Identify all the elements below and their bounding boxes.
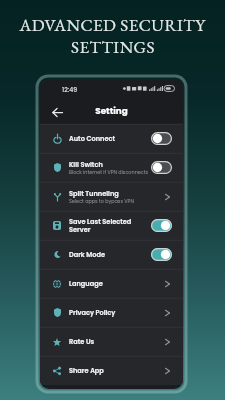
staticText: 12:49 xyxy=(62,85,78,94)
button[interactable]: Privacy Policy xyxy=(40,298,183,327)
button[interactable]: Save Last Selected Server xyxy=(40,211,183,240)
button[interactable]: Privacy Policy xyxy=(162,308,172,318)
button[interactable]: Toggle xyxy=(151,248,172,261)
button[interactable]: Toggle xyxy=(151,219,172,232)
staticText: Select apps to bypass VPN xyxy=(69,198,134,205)
button[interactable]: Dark Mode xyxy=(40,240,183,269)
staticText: Rate Us xyxy=(69,337,95,346)
staticText: Setting xyxy=(40,105,183,117)
button[interactable]: Toggle xyxy=(151,161,172,174)
button[interactable]: Split Tunneling xyxy=(40,182,183,211)
button[interactable]: Auto Connect xyxy=(40,124,183,153)
button[interactable]: Kill Switch xyxy=(40,153,183,182)
staticText: Share App xyxy=(69,366,104,375)
staticText: Block internet if VPN disconnects xyxy=(69,169,149,176)
button[interactable]: Share App xyxy=(40,356,183,385)
staticText: Auto Connect xyxy=(69,134,115,143)
button[interactable]: Language xyxy=(162,279,172,289)
button[interactable]: Rate Us xyxy=(162,337,172,347)
staticText: Language xyxy=(69,279,103,288)
button[interactable]: Rate Us xyxy=(40,327,183,356)
staticText: Kill Switch xyxy=(69,160,103,169)
button[interactable]: Toggle xyxy=(151,132,172,145)
staticText: Save Last Selected Server xyxy=(69,217,151,234)
button[interactable]: Split Tunneling xyxy=(162,192,172,202)
staticText: SETTINGS xyxy=(71,36,155,58)
button[interactable]: Share App xyxy=(162,366,172,376)
button[interactable]: Back xyxy=(48,103,66,121)
staticText: ADVANCED SECURITY xyxy=(19,14,206,36)
staticText: Dark Mode xyxy=(69,250,105,259)
staticText: Privacy Policy xyxy=(69,308,116,317)
staticText: Split Tunneling xyxy=(69,189,119,198)
button[interactable]: Language xyxy=(40,269,183,298)
